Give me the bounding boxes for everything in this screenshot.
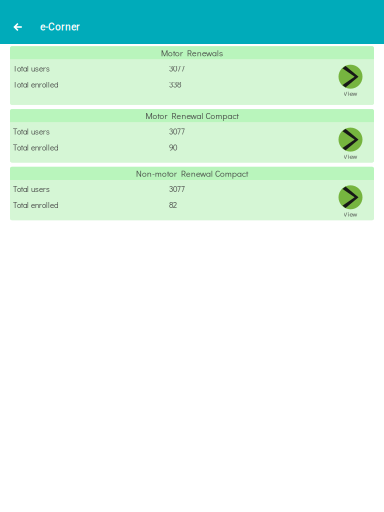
button[interactable]: Back <box>4 10 31 44</box>
staticText: e-Corner <box>40 21 80 33</box>
staticText: View <box>343 152 357 160</box>
staticText: Total users <box>13 126 50 137</box>
staticText: Total users <box>13 63 50 74</box>
staticText: View <box>343 209 357 218</box>
staticText: 3077 <box>169 126 185 137</box>
staticText: 338 <box>169 79 181 90</box>
staticText: 82 <box>169 200 177 210</box>
staticText: View <box>343 89 357 97</box>
staticText: Total enrolled <box>13 79 58 90</box>
staticText: Motor Renewal Compact <box>145 110 238 121</box>
button[interactable]: View <box>331 128 369 161</box>
staticText: 3077 <box>169 184 185 194</box>
staticText: Non-motor Renewal Compact <box>136 168 248 179</box>
button[interactable]: View <box>331 185 369 218</box>
staticText: Total enrolled <box>13 200 58 210</box>
staticText: Total users <box>13 184 50 194</box>
staticText: Total enrolled <box>13 142 58 153</box>
staticText: 3077 <box>169 63 185 74</box>
button[interactable]: View <box>331 65 369 98</box>
staticText: 90 <box>169 142 177 153</box>
staticText: Motor Renewals <box>161 47 223 58</box>
